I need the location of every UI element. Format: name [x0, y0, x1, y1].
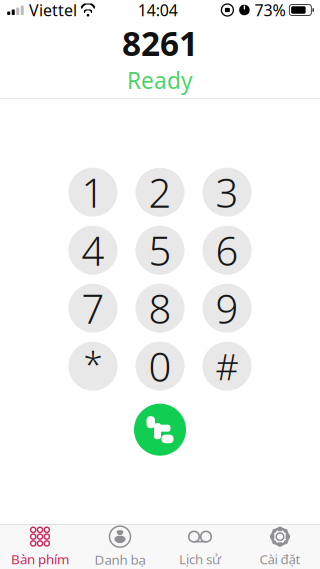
staticText: 0 — [148, 340, 171, 393]
button[interactable]: 2 — [135, 168, 184, 217]
button[interactable]: 4 — [68, 226, 117, 275]
staticText: Danh bạ — [94, 551, 145, 568]
button[interactable]: 3 — [202, 168, 251, 217]
button[interactable]: * — [68, 342, 117, 391]
button[interactable]: # — [202, 342, 251, 391]
staticText: Lịch sử — [179, 550, 221, 568]
staticText: Cài đặt — [259, 550, 300, 568]
button[interactable]: Danh bạ — [80, 525, 160, 569]
staticText: Ready — [127, 65, 193, 95]
staticText: 14:04 — [138, 0, 178, 21]
button[interactable]: Call — [134, 404, 186, 456]
button[interactable]: 1 — [68, 168, 117, 217]
button[interactable]: 7 — [68, 284, 117, 333]
button[interactable]: Cài đặt — [240, 525, 320, 569]
staticText: Bàn phím — [11, 550, 69, 568]
staticText: # — [215, 342, 238, 390]
staticText: 1 — [81, 166, 104, 219]
button[interactable]: Bàn phím — [0, 525, 80, 569]
staticText: Viettel — [29, 0, 77, 21]
button[interactable]: 0 — [135, 342, 184, 391]
button[interactable]: 9 — [202, 284, 251, 333]
staticText: 7 — [81, 282, 104, 335]
button[interactable]: 8 — [135, 284, 184, 333]
staticText: 6 — [215, 224, 238, 277]
button[interactable]: 6 — [202, 226, 251, 275]
staticText: 8261 — [122, 21, 198, 65]
staticText: 5 — [148, 224, 171, 277]
staticText: 9 — [215, 282, 238, 335]
staticText: 8 — [148, 282, 171, 335]
staticText: 2 — [148, 166, 171, 219]
staticText: * — [83, 341, 102, 387]
button[interactable]: 5 — [135, 226, 184, 275]
button[interactable]: Lịch sử — [160, 525, 240, 569]
staticText: 4 — [81, 224, 104, 277]
staticText: 73% — [254, 0, 285, 21]
staticText: 3 — [215, 166, 238, 219]
